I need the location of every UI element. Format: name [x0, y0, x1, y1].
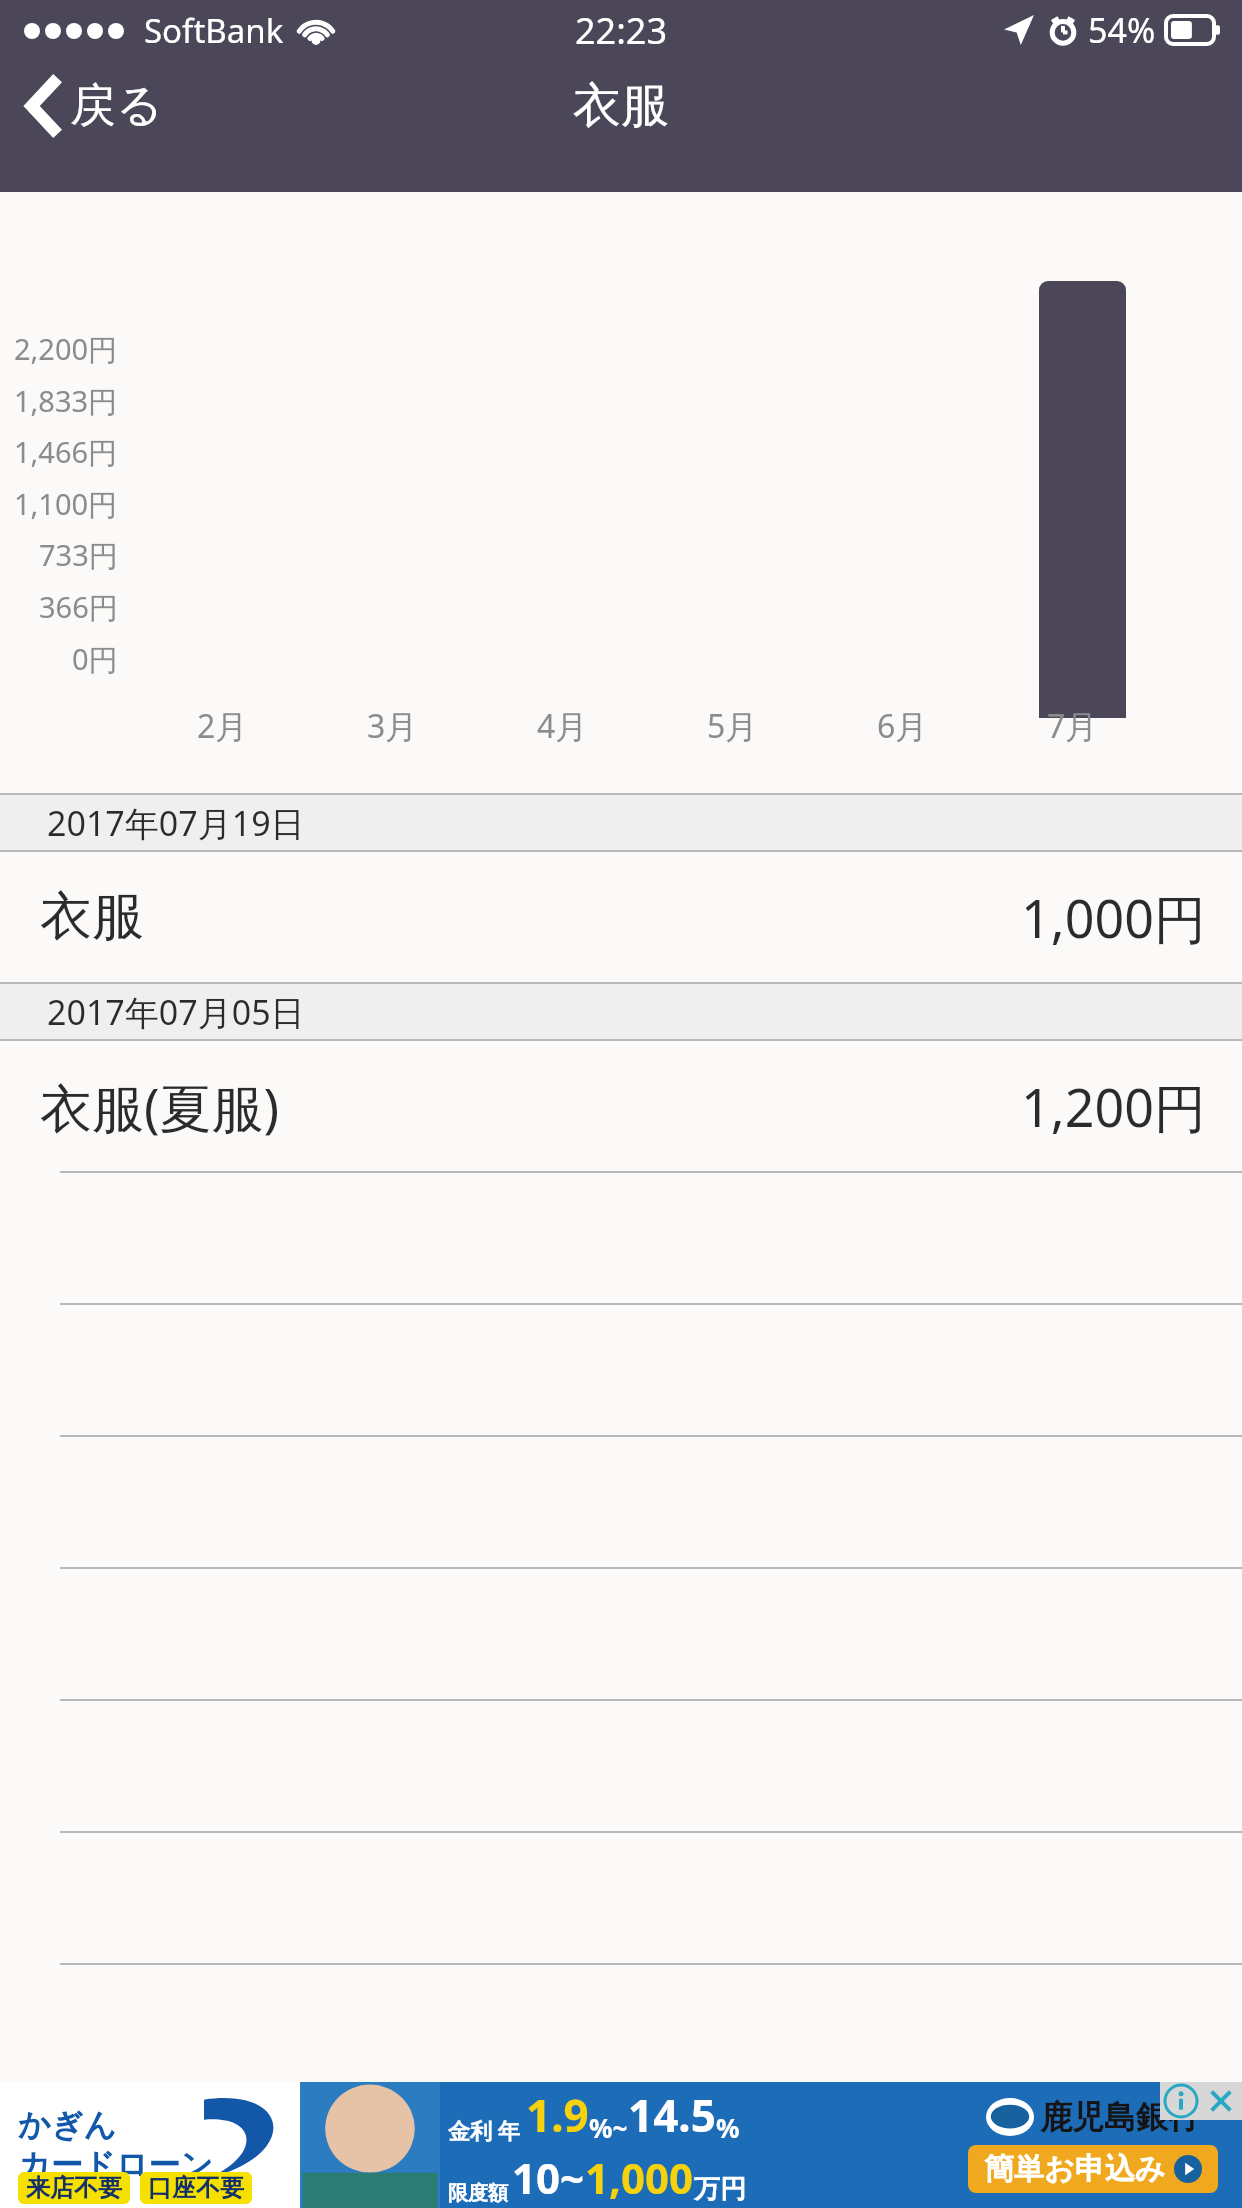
staticText: 1,000円: [1021, 882, 1206, 953]
staticText: 限度額: [448, 2181, 508, 2206]
staticText: 733円: [39, 535, 118, 575]
button[interactable]: かぎん: [0, 2082, 1242, 2208]
staticText: 54%: [1088, 7, 1156, 53]
staticText: 衣服: [40, 884, 144, 950]
staticText: かぎん: [18, 2105, 117, 2145]
button[interactable]: 簡単お申込み: [968, 2145, 1218, 2193]
staticText: 22:23: [575, 6, 668, 55]
staticText: 366円: [39, 587, 118, 627]
staticText: 2017年07月19日: [47, 800, 305, 846]
staticText: 1,200円: [1021, 1071, 1206, 1142]
staticText: 1.9: [526, 2085, 589, 2145]
staticText: 簡単お申込み: [984, 2150, 1166, 2188]
button[interactable]: Ad information: [1163, 2083, 1199, 2119]
button[interactable]: 戻る: [0, 56, 188, 156]
staticText: 来店不要: [26, 2173, 122, 2203]
staticText: 1,100円: [14, 484, 118, 524]
staticText: 2017年07月05日: [47, 989, 305, 1035]
staticText: 衣服(夏服): [40, 1071, 280, 1142]
staticText: 14.5: [628, 2085, 716, 2145]
staticText: 1,000: [585, 2149, 694, 2206]
staticText: 5月: [707, 704, 758, 748]
staticText: 7月: [1047, 704, 1098, 748]
staticText: 口座不要: [148, 2173, 244, 2203]
staticText: 3月: [367, 704, 418, 748]
staticText: 万円: [694, 2173, 746, 2206]
staticText: 0円: [72, 639, 118, 679]
staticText: 衣服: [573, 76, 669, 136]
staticText: 10~: [512, 2149, 585, 2206]
staticText: 1,466円: [14, 432, 118, 472]
staticText: 1,833円: [14, 381, 118, 421]
staticText: %~: [589, 2110, 628, 2145]
staticText: 戻る: [70, 77, 164, 135]
button[interactable]: 衣服(夏服): [0, 1041, 1242, 1171]
staticText: 2月: [197, 704, 248, 748]
staticText: 4月: [537, 704, 588, 748]
staticText: %: [716, 2110, 740, 2145]
staticText: カードローン: [18, 2145, 213, 2185]
staticText: SoftBank: [144, 8, 284, 53]
button[interactable]: Close ad: [1203, 2083, 1239, 2119]
staticText: 6月: [877, 704, 928, 748]
staticText: 鹿児島銀行: [1040, 2097, 1200, 2137]
staticText: 金利 年: [448, 2115, 520, 2145]
staticText: 2,200円: [14, 329, 118, 369]
button[interactable]: 衣服: [0, 852, 1242, 982]
